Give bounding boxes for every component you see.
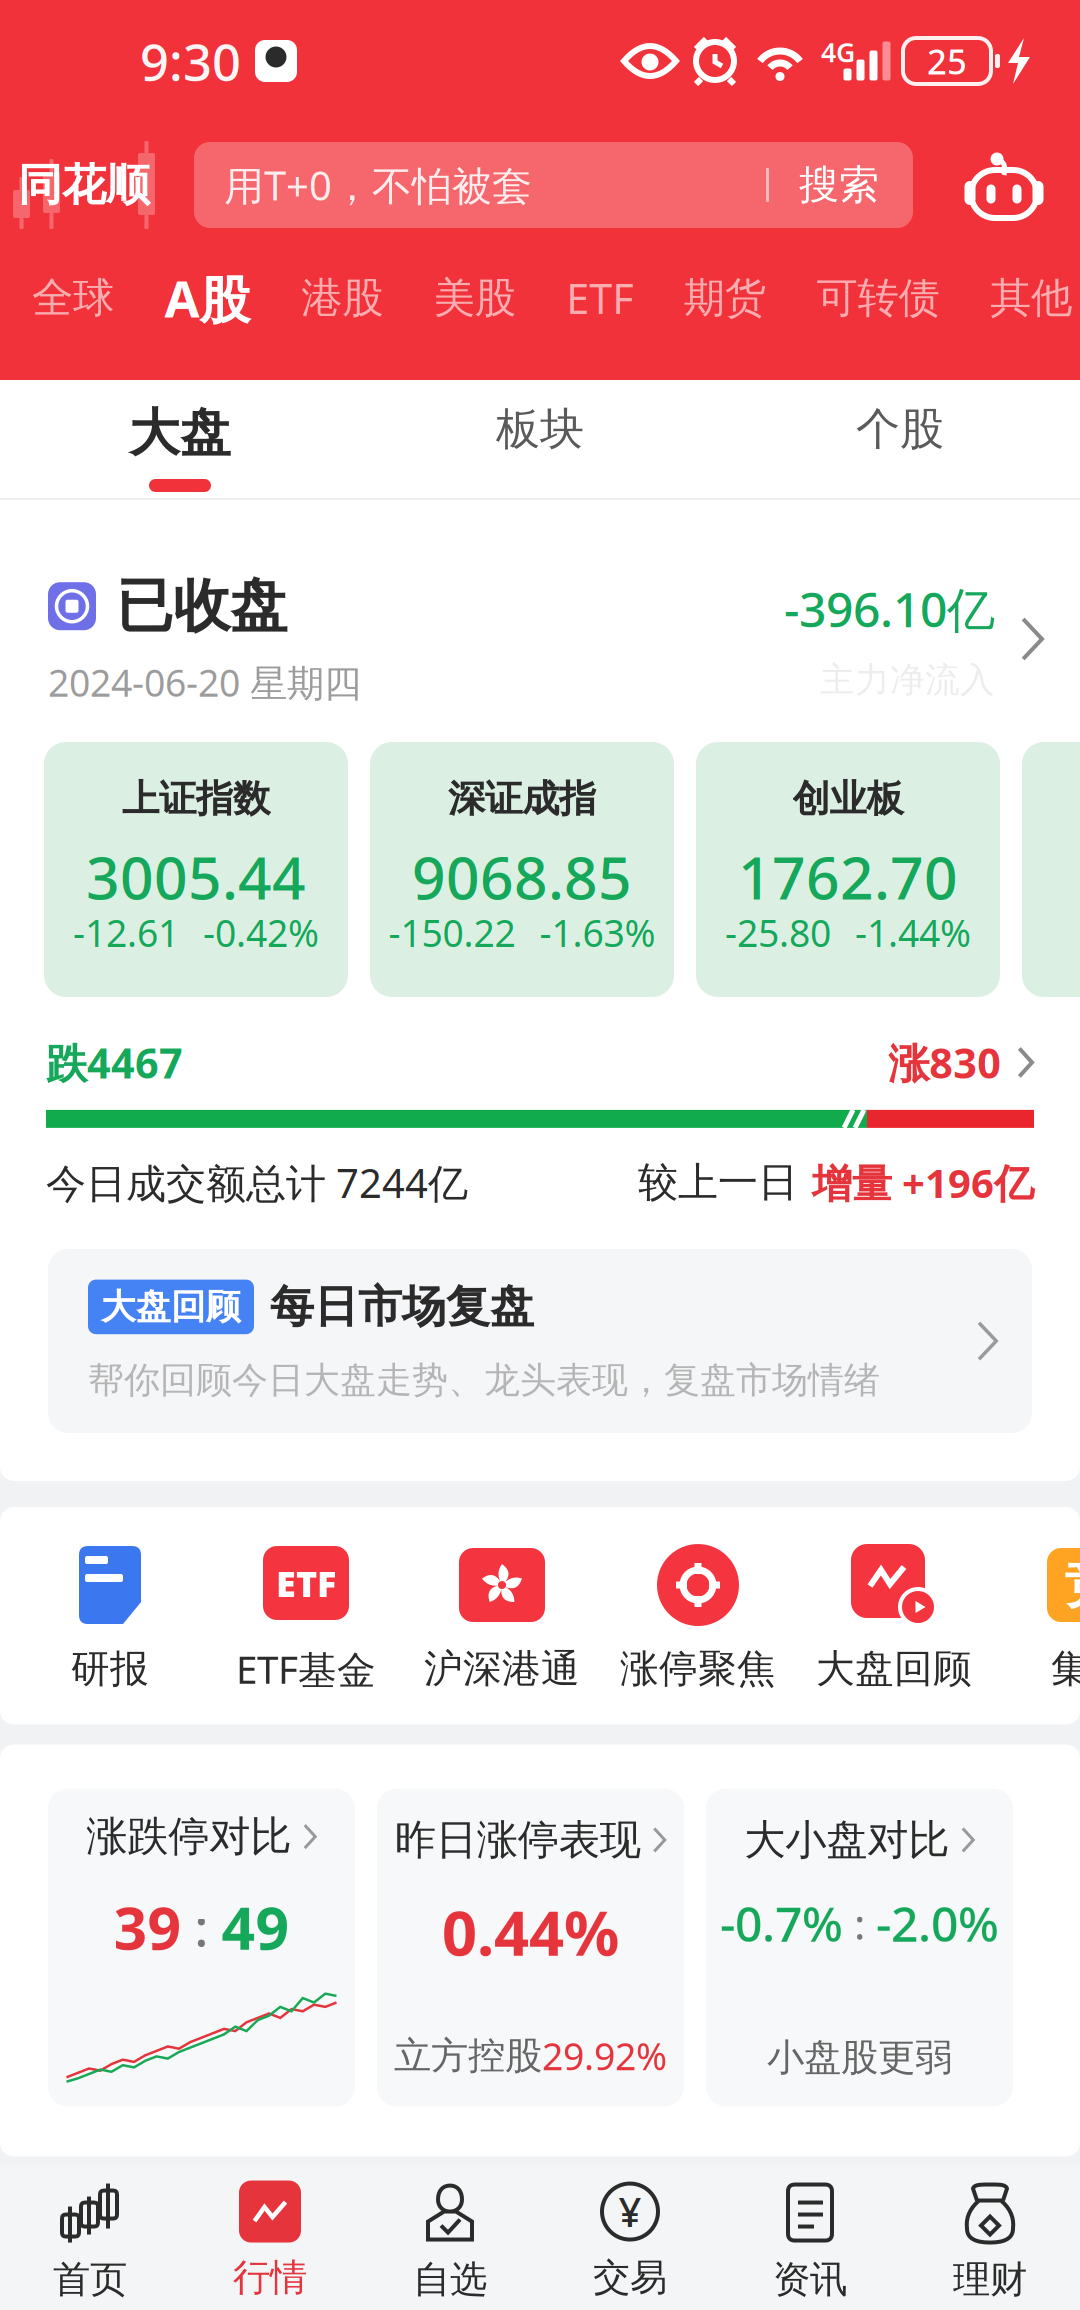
button[interactable]: 上证指数 xyxy=(44,742,348,997)
staticText: -25.80 xyxy=(725,908,831,957)
staticText: 9068.85 xyxy=(412,838,632,916)
staticText: 行情 xyxy=(233,2255,307,2300)
staticText: 创业板 xyxy=(792,776,903,822)
button[interactable]: 行情 xyxy=(180,2165,360,2310)
staticText: ETF xyxy=(276,1559,336,1607)
button[interactable]: 竞 xyxy=(992,1543,1080,1692)
button[interactable]: 涨停聚焦 xyxy=(600,1543,796,1692)
staticText: 涨跌停对比 xyxy=(86,1811,291,1862)
staticText: -396.10亿 xyxy=(784,577,995,640)
button[interactable]: 大盘回顾 xyxy=(48,1249,1032,1433)
button[interactable]: 资讯 xyxy=(720,2165,900,2310)
staticText: 跌4467 xyxy=(46,1035,183,1090)
button[interactable]: 期货 xyxy=(684,248,766,348)
staticText: 小盘股更弱 xyxy=(767,2035,952,2081)
button[interactable]: 可转债 xyxy=(816,248,939,348)
staticText: 理财 xyxy=(953,2257,1027,2302)
staticText: 已收盘 xyxy=(116,571,287,641)
staticText: 全球 xyxy=(32,273,114,323)
button[interactable]: 美股 xyxy=(434,248,516,348)
staticText: -0.7% xyxy=(720,1891,843,1955)
staticText: ETF xyxy=(566,271,633,325)
staticText: ¥ xyxy=(618,2185,641,2238)
staticText: 大盘回顾 xyxy=(816,1645,972,1692)
button[interactable]: 理财 xyxy=(900,2165,1080,2310)
staticText: 3005.44 xyxy=(86,838,306,916)
button[interactable]: 全球 xyxy=(32,248,114,348)
staticText: 增量 +196亿 xyxy=(812,1156,1034,1209)
staticText: 港股 xyxy=(301,273,383,323)
staticText: 主力净流入 xyxy=(820,659,995,701)
staticText: 资讯 xyxy=(773,2257,847,2302)
button[interactable]: 昨日涨停表现 xyxy=(377,1789,684,2107)
staticText: 29.92% xyxy=(542,2031,667,2081)
button[interactable]: 其他 xyxy=(990,248,1072,348)
staticText: 其他 xyxy=(990,273,1072,323)
staticText: 个股 xyxy=(856,402,944,456)
button[interactable]: 港股 xyxy=(301,248,383,348)
staticText: 研报 xyxy=(71,1645,149,1692)
staticText: : xyxy=(181,1893,221,1961)
staticText: 首页 xyxy=(53,2257,127,2302)
staticText: : xyxy=(843,1895,876,1952)
button[interactable]: 个股 xyxy=(720,380,1080,498)
button[interactable]: 涨跌停对比 xyxy=(48,1789,355,2107)
staticText: 深证成指 xyxy=(448,776,596,822)
staticText: -2.0% xyxy=(876,1891,999,1955)
button[interactable]: ¥ xyxy=(540,2165,720,2310)
staticText: 1762.70 xyxy=(738,838,958,916)
staticText: 自选 xyxy=(413,2257,487,2302)
staticText: 4G xyxy=(821,34,855,70)
button[interactable]: 深证成指 xyxy=(370,742,674,997)
staticText: 每日市场复盘 xyxy=(270,1280,534,1334)
staticText: 0.44% xyxy=(442,1891,619,1973)
staticText: 美股 xyxy=(434,273,516,323)
staticText: 9:30 xyxy=(140,27,241,95)
staticText: -1.63% xyxy=(539,908,655,957)
staticText: ETF基金 xyxy=(236,1643,376,1694)
button[interactable]: 大小盘对比 xyxy=(706,1789,1013,2107)
staticText: 沪深港通 xyxy=(424,1645,580,1692)
staticText: 期货 xyxy=(684,273,766,323)
staticText: 49 xyxy=(221,1888,289,1966)
staticText: 上证指数 xyxy=(122,776,270,822)
button[interactable]: 自选 xyxy=(360,2165,540,2310)
staticText: 用T+0，不怕被套 xyxy=(224,158,532,211)
button[interactable]: 研报 xyxy=(12,1543,208,1692)
staticText: 集合 xyxy=(1051,1645,1080,1692)
staticText: 竞 xyxy=(1064,1554,1080,1616)
staticText: 今日成交额总计 7244亿 xyxy=(46,1156,468,1209)
staticText: -150.22 xyxy=(388,908,515,957)
staticText: 涨停聚焦 xyxy=(620,1645,776,1692)
staticText: 涨830 xyxy=(888,1035,1001,1090)
button[interactable]: 创业板 xyxy=(696,742,1000,997)
button[interactable]: 板块 xyxy=(360,380,720,498)
staticText: 交易 xyxy=(593,2255,667,2300)
button[interactable]: 首页 xyxy=(0,2165,180,2310)
staticText: 板块 xyxy=(496,402,584,456)
staticText: 39 xyxy=(113,1888,181,1966)
staticText: -0.42% xyxy=(203,908,319,957)
button[interactable]: A股 xyxy=(165,248,251,348)
staticText: 立方控股 xyxy=(394,2033,542,2079)
staticText: A股 xyxy=(165,264,251,332)
staticText: 25 xyxy=(927,38,967,84)
staticText: 同花顺 xyxy=(18,158,150,212)
button[interactable]: 沪深港通 xyxy=(404,1543,600,1692)
staticText: 帮你回顾今日大盘走势、龙头表现，复盘市场情绪 xyxy=(88,1358,880,1402)
staticText: 昨日涨停表现 xyxy=(395,1815,641,1865)
button[interactable]: ETF xyxy=(208,1541,404,1694)
button[interactable]: ETF xyxy=(566,248,633,348)
staticText: -1.44% xyxy=(855,908,971,957)
staticText: 大盘 xyxy=(129,402,231,464)
staticText: 较上一日 xyxy=(638,1158,798,1207)
button[interactable]: 大盘回顾 xyxy=(796,1543,992,1692)
staticText: 大盘回顾 xyxy=(101,1286,241,1328)
staticText: 搜索 xyxy=(799,160,879,209)
staticText: 2024-06-20 星期四 xyxy=(48,657,361,707)
button[interactable]: 用T+0，不怕被套 xyxy=(194,142,913,228)
button[interactable]: 大盘 xyxy=(0,380,360,498)
button[interactable]: 智能助手 xyxy=(964,150,1044,220)
staticText: -12.61 xyxy=(73,908,179,957)
staticText: 大小盘对比 xyxy=(744,1815,949,1865)
